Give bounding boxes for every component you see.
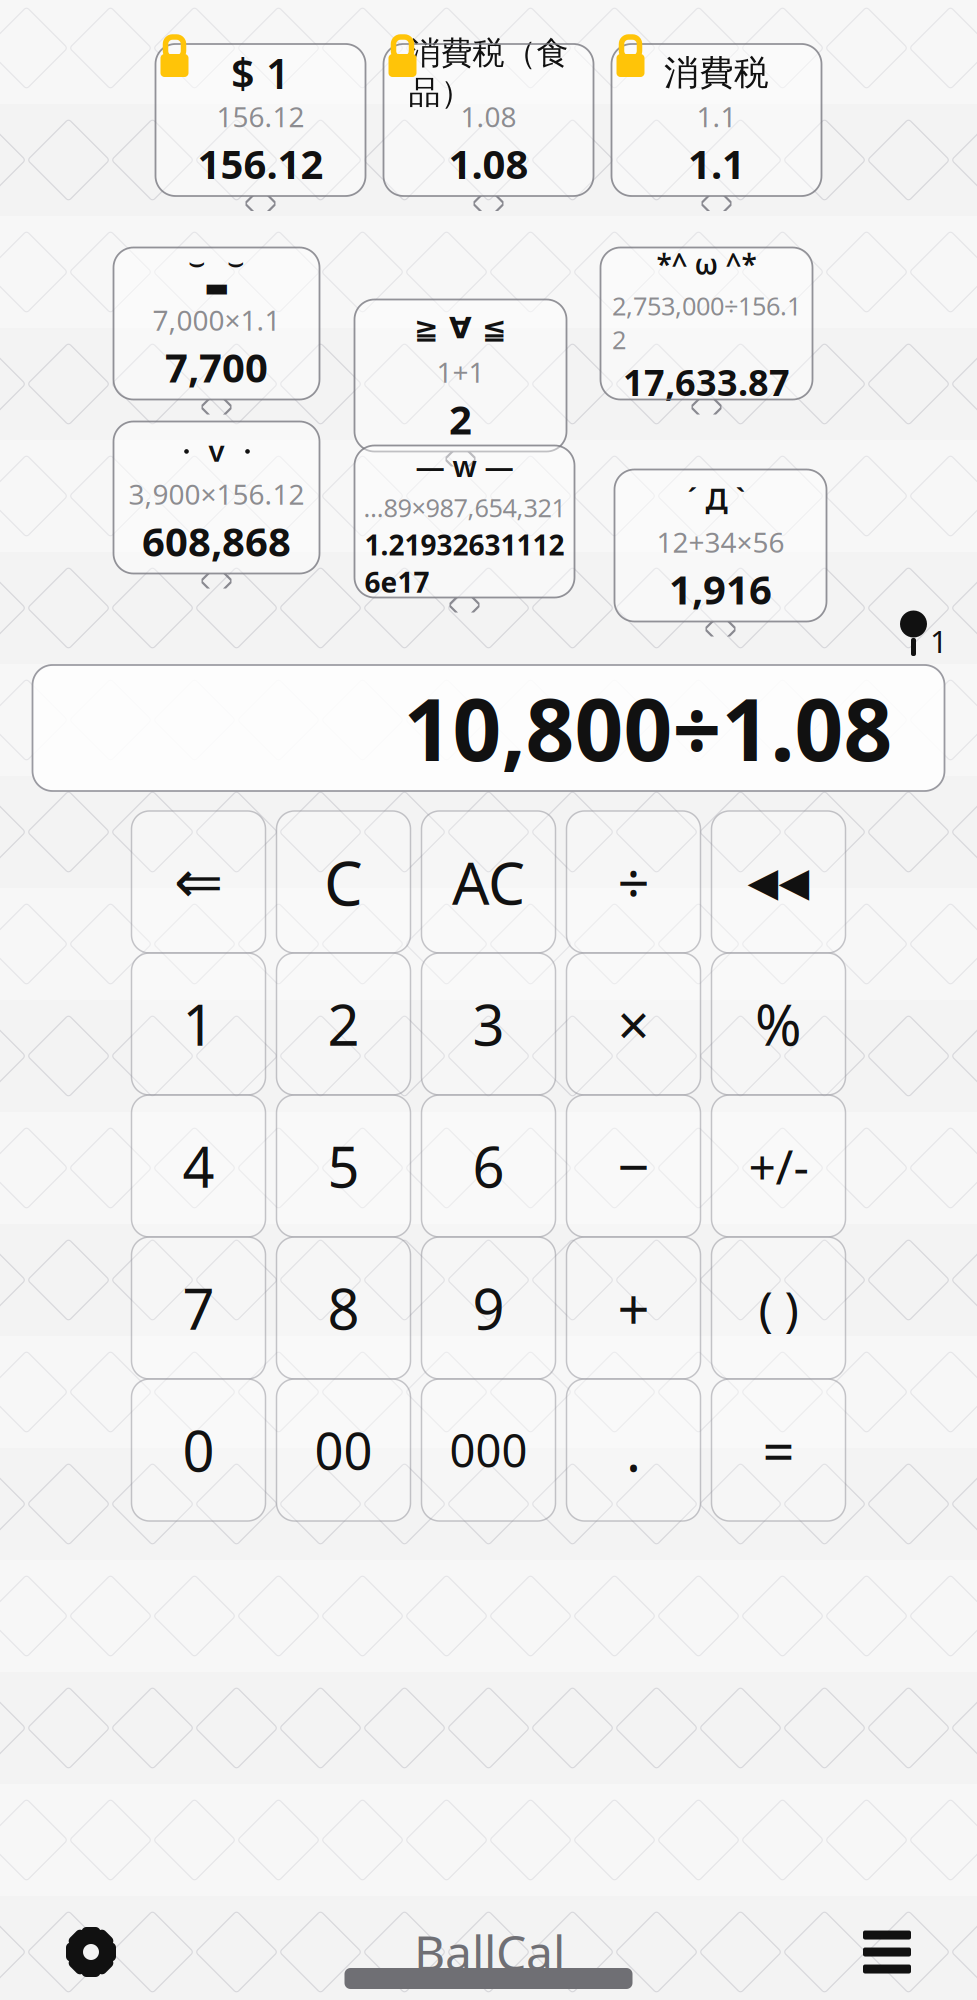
staticText: BallCal (414, 1920, 565, 1984)
button[interactable]: 000 (421, 1379, 555, 1521)
staticText: 8 (327, 1271, 359, 1345)
staticText: 1+1 (436, 353, 484, 390)
button[interactable]: ≧ ∀ ≦ (354, 299, 566, 451)
staticText: ◀◀ (747, 859, 809, 905)
staticText: $ 1 (231, 45, 290, 100)
staticText: 156.12 (197, 137, 323, 190)
staticText: ÷ (617, 845, 649, 919)
staticText: 2 (449, 392, 472, 446)
button[interactable]: — w — (354, 445, 574, 597)
button[interactable]: . (566, 1379, 700, 1521)
staticText: 6 (472, 1129, 504, 1203)
button[interactable]: Menu (833, 1920, 941, 1984)
staticText: 3,900×156.12 (128, 475, 304, 512)
staticText: × (617, 987, 649, 1061)
staticText: 17,633.87 (623, 358, 790, 406)
staticText: …89×987,654,321 (363, 490, 565, 524)
staticText: ( ) (758, 1276, 798, 1340)
button[interactable]: ´ Д ` (614, 469, 826, 621)
button[interactable]: × (566, 953, 700, 1095)
staticText: 156.12 (216, 98, 304, 135)
button[interactable]: + (566, 1237, 700, 1379)
staticText: 10,800÷1.08 (403, 671, 892, 785)
staticText: 7,000×1.1 (152, 301, 280, 338)
staticText: 1 (930, 621, 948, 661)
button[interactable]: 00 (276, 1379, 410, 1521)
staticText: ≧ ∀ ≦ (414, 312, 507, 345)
button[interactable]: ( ) (711, 1237, 845, 1379)
staticText: 2 (327, 987, 359, 1061)
staticText: *^ ω ^* (656, 245, 756, 283)
staticText: 4 (182, 1129, 214, 1203)
button[interactable]: ÷ (566, 811, 700, 953)
button[interactable]: 2 (276, 953, 410, 1095)
staticText: 1.1 (696, 98, 736, 135)
staticText: 1.1 (688, 137, 745, 190)
staticText: C (324, 841, 363, 923)
staticText: 1.08 (460, 98, 516, 135)
button[interactable]: Settings (36, 1915, 146, 1989)
staticText: 5 (327, 1129, 359, 1203)
button[interactable]: ⇐ (131, 811, 265, 953)
button[interactable]: 5 (276, 1095, 410, 1237)
button[interactable]: 6 (421, 1095, 555, 1237)
button[interactable]: 7 (131, 1237, 265, 1379)
button[interactable]: 0 (131, 1379, 265, 1521)
button[interactable]: $ 1 (155, 44, 365, 196)
staticText: 608,868 (142, 514, 291, 568)
staticText: 消費税 (664, 52, 769, 94)
staticText: 7 (182, 1271, 214, 1345)
button[interactable]: 8 (276, 1237, 410, 1379)
staticText: ´ Д ` (687, 479, 753, 518)
staticText: 2,753,000÷156.12 (612, 289, 801, 356)
button[interactable]: 1 (131, 953, 265, 1095)
staticText: − (617, 1129, 649, 1203)
button[interactable]: ⌣ ⌣ (113, 247, 319, 399)
staticText: ⇐ (174, 849, 223, 915)
staticText: % (755, 987, 802, 1061)
button[interactable]: +/- (711, 1095, 845, 1237)
staticText: ⌣ ⌣ (188, 250, 245, 276)
staticText: . (626, 1413, 641, 1487)
button[interactable]: = (711, 1379, 845, 1521)
staticText: = (762, 1413, 794, 1487)
button[interactable]: 消費税 (611, 44, 821, 196)
staticText: 9 (472, 1271, 504, 1345)
button[interactable]: 4 (131, 1095, 265, 1237)
staticText: 7,700 (165, 340, 268, 394)
button[interactable]: C (276, 811, 410, 953)
staticText: — w — (415, 446, 513, 485)
staticText: 1.08 (448, 137, 528, 190)
staticText: 0 (182, 1413, 214, 1487)
staticText: 12+34×56 (656, 523, 784, 560)
staticText: 000 (449, 1420, 527, 1480)
staticText: +/- (748, 1134, 808, 1198)
staticText: 1.219326311126e17 (364, 526, 564, 600)
button[interactable]: % (711, 953, 845, 1095)
staticText: 00 (314, 1416, 372, 1484)
staticText: 消費税（食品） (408, 33, 568, 112)
button[interactable]: AC (421, 811, 555, 953)
staticText: ▬ (204, 272, 229, 302)
button[interactable]: ・ v ・ (113, 421, 319, 573)
staticText: 3 (472, 987, 504, 1061)
button[interactable]: 消費税（食品） (383, 44, 593, 196)
button[interactable]: 9 (421, 1237, 555, 1379)
staticText: + (617, 1271, 649, 1345)
staticText: 1 (182, 987, 214, 1061)
button[interactable]: *^ ω ^* (600, 247, 812, 399)
staticText: AC (452, 843, 525, 921)
button[interactable]: ◀◀ (711, 811, 845, 953)
staticText: ・ v ・ (171, 431, 261, 470)
button[interactable]: 3 (421, 953, 555, 1095)
staticText: 1,916 (669, 562, 772, 616)
button[interactable]: 10,800÷1.08 (32, 665, 944, 791)
button[interactable]: − (566, 1095, 700, 1237)
